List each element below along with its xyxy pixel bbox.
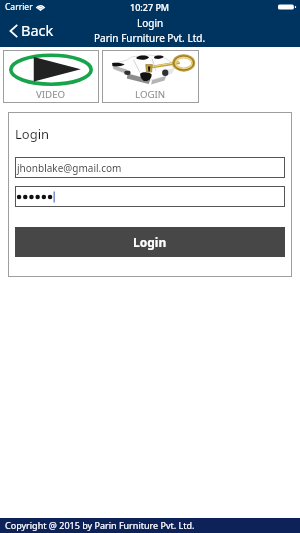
staticText: Login <box>137 16 164 30</box>
button[interactable] <box>15 186 285 207</box>
staticText: VIDEO <box>36 88 66 101</box>
staticText: LOGIN <box>135 88 166 101</box>
staticText: Parin Furniture Pvt. Ltd. <box>94 31 206 45</box>
button[interactable]: Login <box>15 227 285 257</box>
staticText: Login <box>133 234 167 250</box>
staticText: jhonblake@gmail.com <box>17 161 122 175</box>
staticText: Back <box>21 20 54 40</box>
staticText: 10:27 PM <box>130 1 170 13</box>
staticText: Login <box>15 125 50 143</box>
button[interactable]: LOGIN <box>102 50 199 103</box>
button[interactable]: Back <box>8 20 54 40</box>
staticText: Copyright @ 2015 by Parin Furniture Pvt.… <box>5 519 195 531</box>
staticText: Carrier <box>5 1 33 13</box>
button[interactable]: jhonblake@gmail.com <box>15 157 285 178</box>
button[interactable]: VIDEO <box>3 50 99 103</box>
